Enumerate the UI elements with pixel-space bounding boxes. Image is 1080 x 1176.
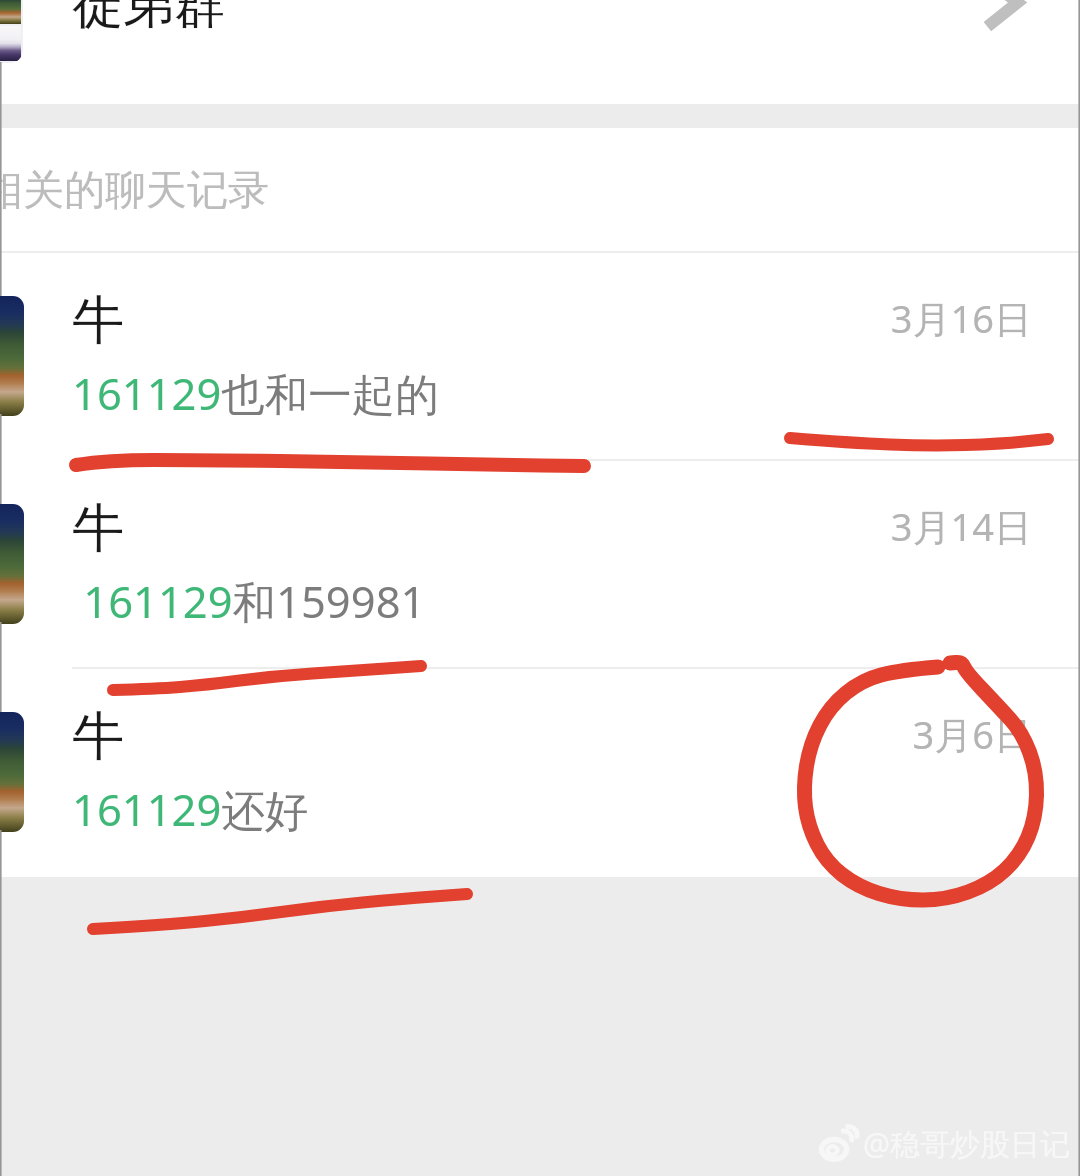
staticText: 3月16日 [890,292,1032,344]
staticText: 相关的聊天记录 [0,165,269,217]
staticText: 3月14日 [890,500,1032,552]
staticText: 161129和159981 [72,571,426,630]
button[interactable]: 牛 [0,461,1080,669]
staticText: @稳哥炒股日记 [863,1123,1070,1164]
staticText: 161129还好 [72,779,309,838]
button[interactable]: 牛 [0,669,1080,877]
button[interactable]: 牛 [0,253,1080,461]
staticText: 牛 [72,496,124,562]
button[interactable]: Open group chat [977,0,1035,31]
staticText: 牛 [72,288,124,354]
button[interactable]: 徒弟群 [0,0,1080,104]
staticText: 3月6日 [912,708,1032,760]
staticText: 牛 [72,704,124,770]
staticText: 161129也和一起的 [72,363,439,422]
staticText: 徒弟群 [72,0,225,37]
